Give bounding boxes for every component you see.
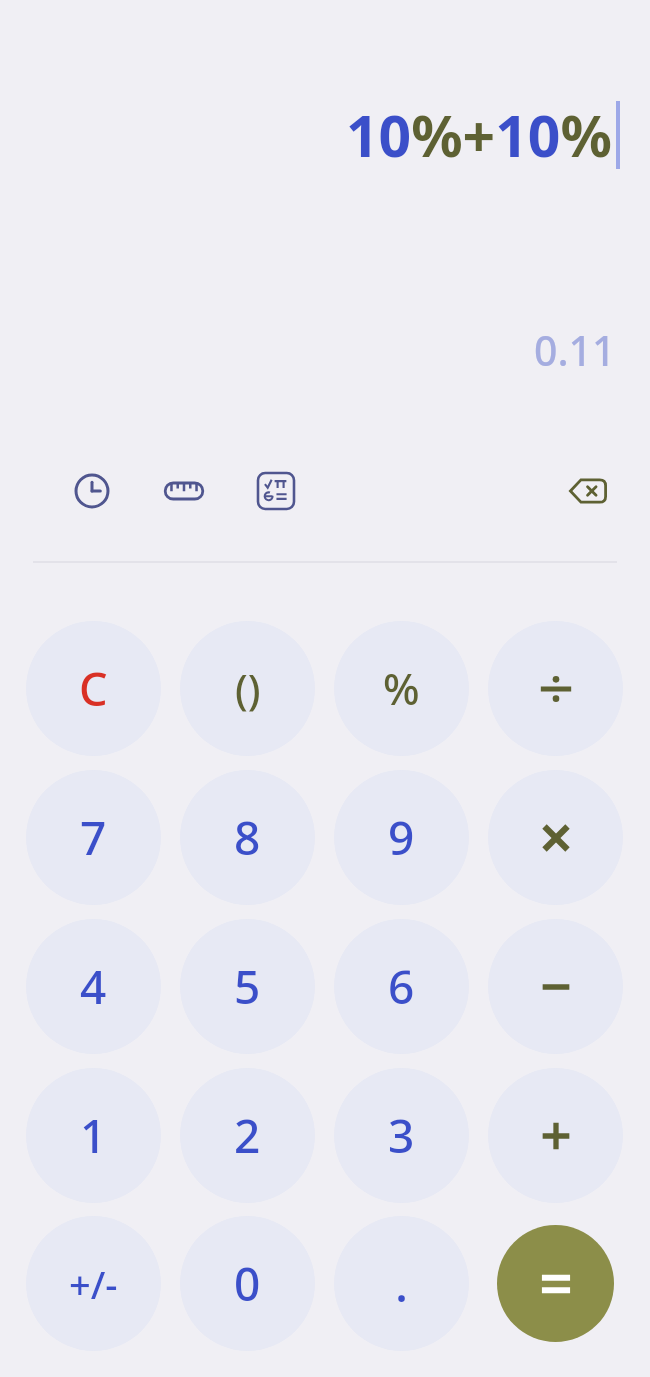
staticText: 6 xyxy=(388,955,415,1018)
staticText: 1 xyxy=(80,1104,107,1167)
button[interactable]: C xyxy=(26,621,161,756)
button[interactable]: % xyxy=(334,621,469,756)
staticText: 4 xyxy=(80,955,107,1018)
button[interactable]: Multiply xyxy=(488,770,623,905)
staticText: 5 xyxy=(234,955,261,1018)
button[interactable]: . xyxy=(334,1216,469,1351)
button[interactable]: 6 xyxy=(334,919,469,1054)
button[interactable]: Add xyxy=(488,1068,623,1203)
button[interactable]: 1 xyxy=(26,1068,161,1203)
staticText: 10%+10% xyxy=(346,96,612,174)
button[interactable]: Scientific functions xyxy=(248,463,304,519)
button[interactable]: 5 xyxy=(180,919,315,1054)
button[interactable]: Unit converter xyxy=(156,463,212,519)
button[interactable]: 7 xyxy=(26,770,161,905)
staticText: 9 xyxy=(388,806,415,869)
button[interactable]: Equals xyxy=(497,1225,614,1342)
button[interactable]: 8 xyxy=(180,770,315,905)
button[interactable]: Divide xyxy=(488,621,623,756)
staticText: 0.11 xyxy=(534,322,616,378)
staticText: . xyxy=(395,1251,409,1316)
button[interactable]: Subtract xyxy=(488,919,623,1054)
staticText: 0 xyxy=(234,1252,261,1315)
button[interactable]: 4 xyxy=(26,919,161,1054)
staticText: 8 xyxy=(234,806,261,869)
staticText: +/- xyxy=(69,1258,118,1310)
button[interactable]: History xyxy=(64,463,120,519)
button[interactable]: 9 xyxy=(334,770,469,905)
staticText: () xyxy=(235,661,261,717)
staticText: % xyxy=(383,659,420,718)
button[interactable]: 2 xyxy=(180,1068,315,1203)
staticText: 7 xyxy=(80,806,107,869)
staticText: C xyxy=(79,658,108,719)
button[interactable]: Backspace xyxy=(560,463,616,519)
button[interactable]: 0 xyxy=(180,1216,315,1351)
staticText: 2 xyxy=(234,1104,261,1167)
button[interactable]: () xyxy=(180,621,315,756)
staticText: 3 xyxy=(388,1104,415,1167)
button[interactable]: +/- xyxy=(26,1216,161,1351)
button[interactable]: 3 xyxy=(334,1068,469,1203)
